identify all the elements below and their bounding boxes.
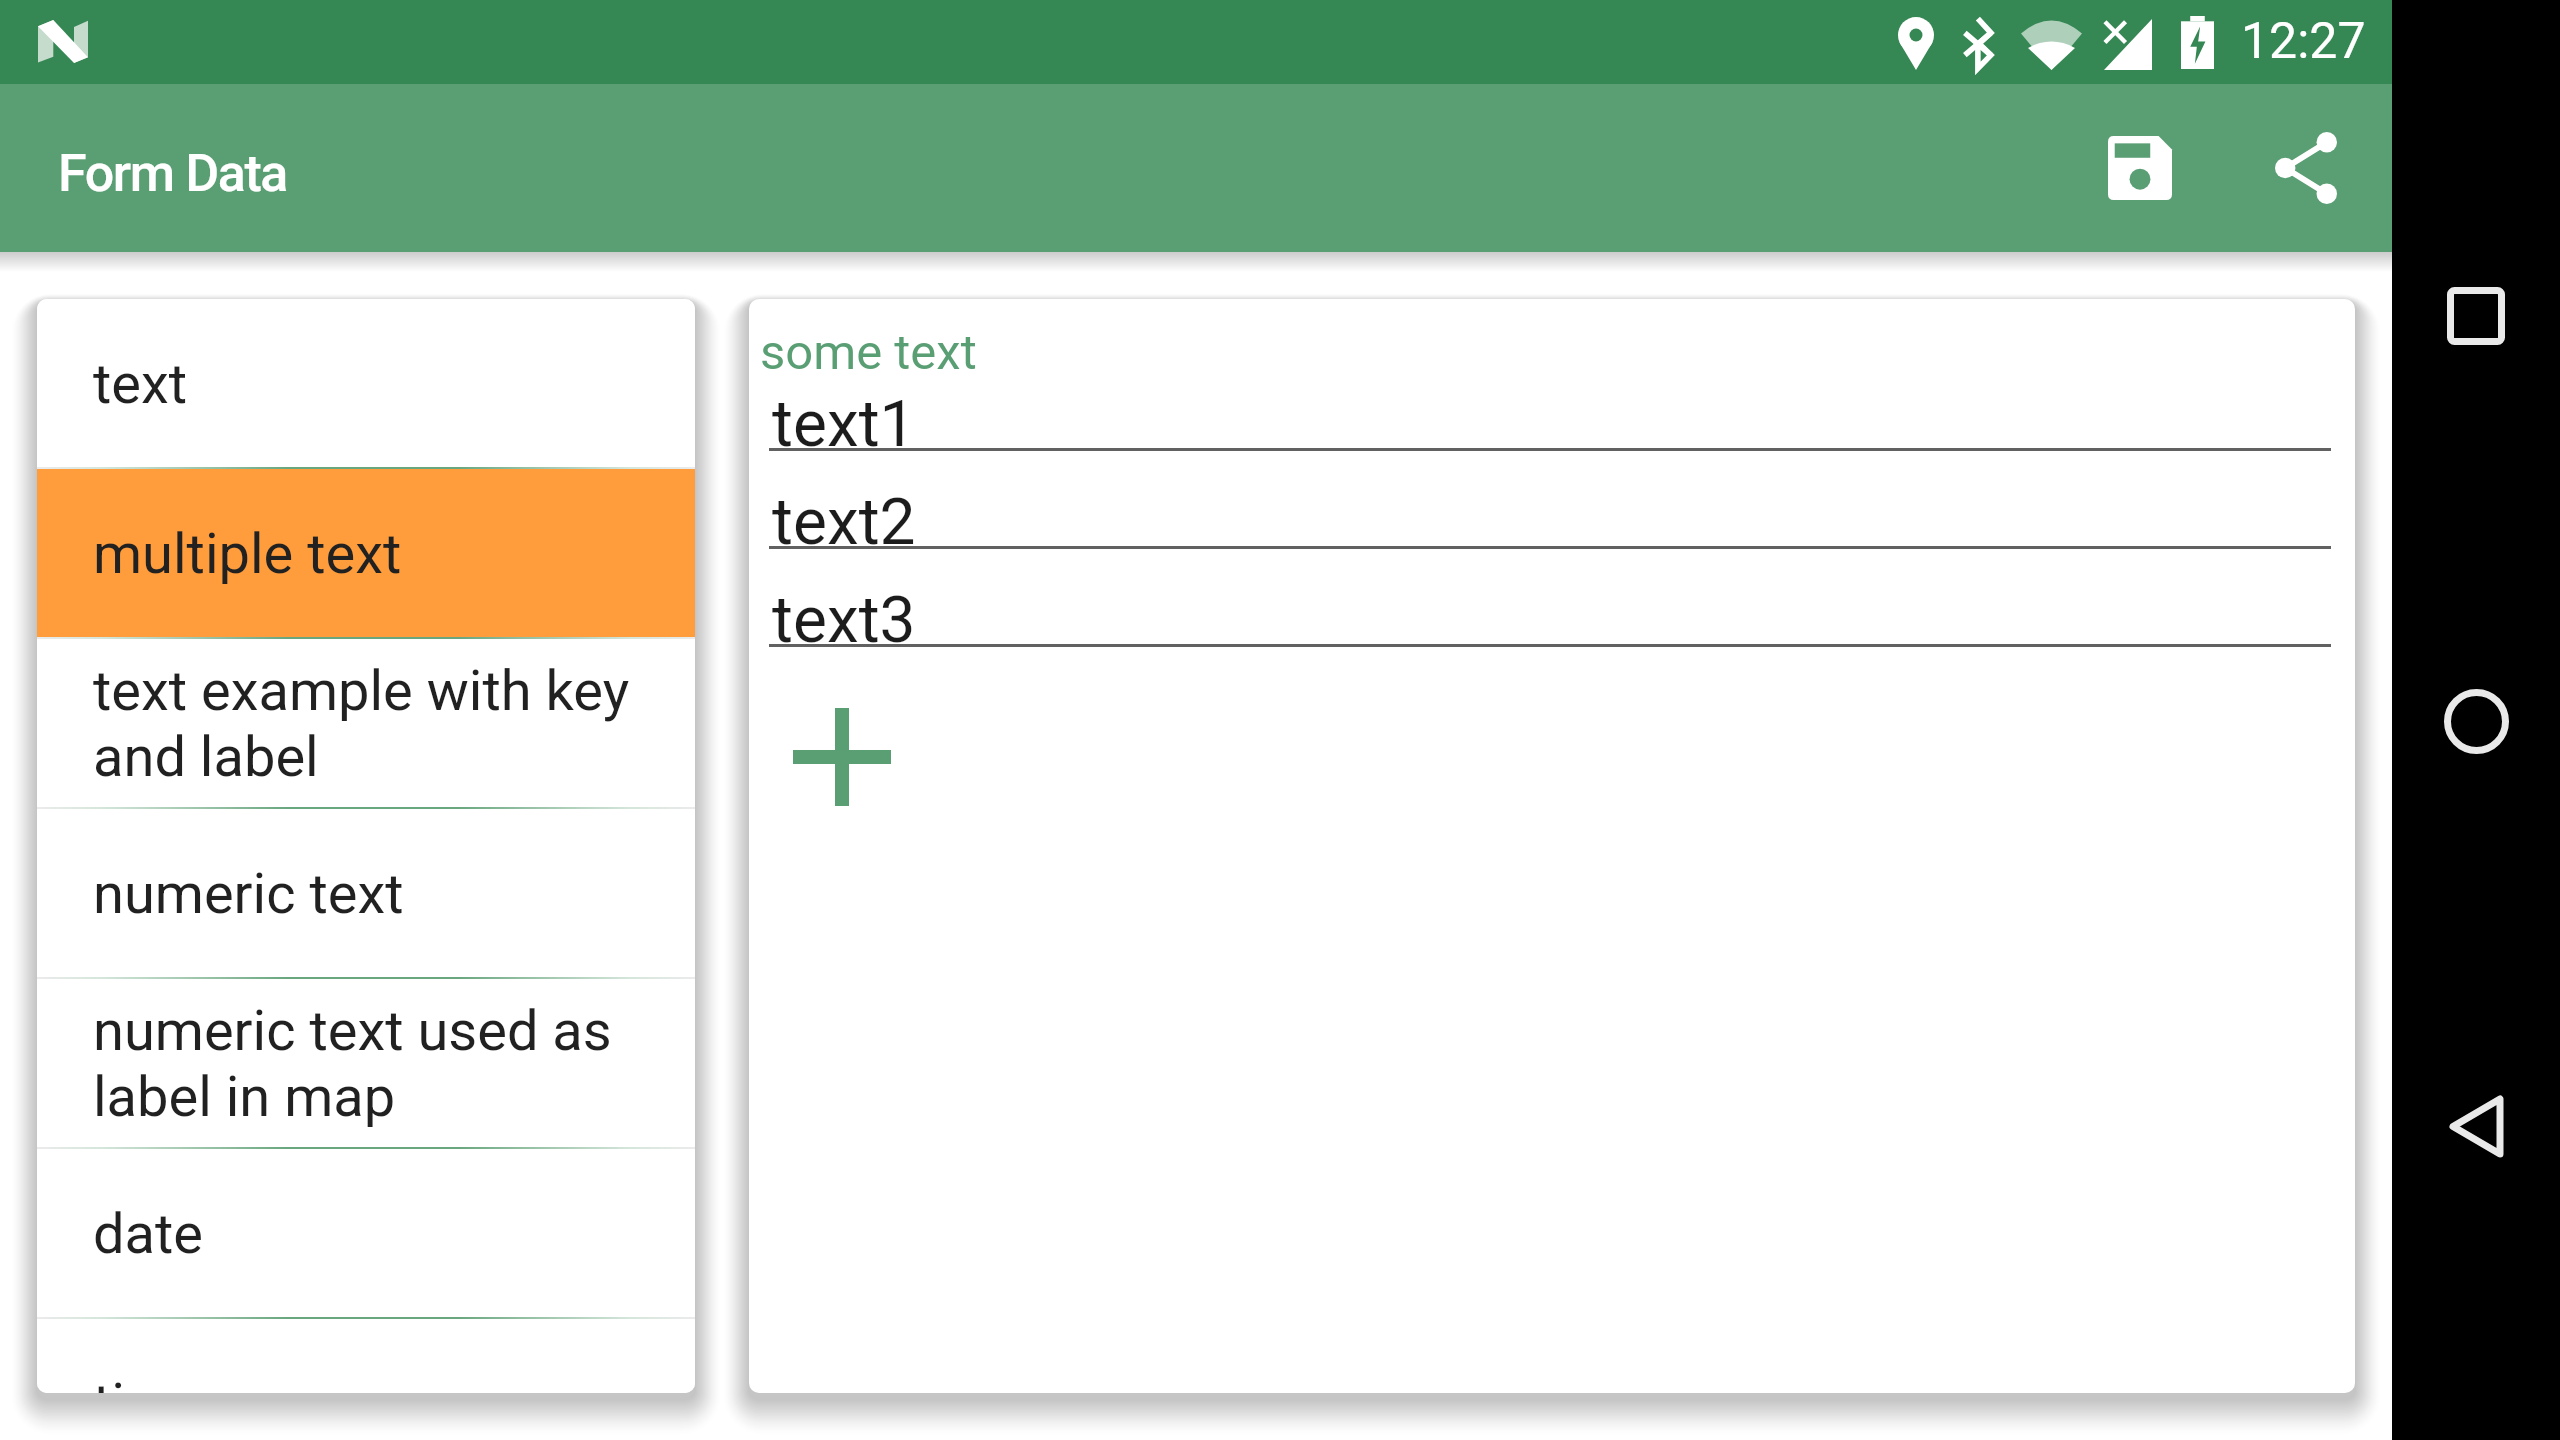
- staticText: text example with key and label: [93, 658, 639, 790]
- staticText: multiple text: [93, 521, 402, 587]
- button[interactable]: Share: [2248, 110, 2364, 226]
- staticText: text2: [772, 485, 916, 560]
- button[interactable]: time: [37, 1319, 695, 1393]
- staticText: date: [93, 1201, 204, 1267]
- staticText: text1: [772, 387, 916, 462]
- button[interactable]: multiple text: [37, 469, 695, 639]
- button[interactable]: text: [37, 299, 695, 469]
- button[interactable]: Save: [2082, 110, 2198, 226]
- staticText: text: [93, 351, 188, 417]
- staticText: numeric text used as label in map: [93, 998, 639, 1130]
- button[interactable]: Home: [2392, 637, 2560, 805]
- button[interactable]: date: [37, 1149, 695, 1319]
- staticText: some text: [760, 324, 977, 381]
- staticText: Form Data: [58, 143, 287, 204]
- button[interactable]: Recents: [2392, 232, 2560, 400]
- button[interactable]: Add: [781, 696, 903, 818]
- button[interactable]: numeric text: [37, 809, 695, 979]
- button[interactable]: Back: [2392, 1042, 2560, 1210]
- staticText: numeric text: [93, 861, 404, 927]
- button[interactable]: numeric text used as label in map: [37, 979, 695, 1149]
- button[interactable]: text example with key and label: [37, 639, 695, 809]
- staticText: 12:27: [2241, 12, 2366, 71]
- staticText: time: [93, 1371, 204, 1393]
- staticText: text3: [772, 583, 916, 658]
